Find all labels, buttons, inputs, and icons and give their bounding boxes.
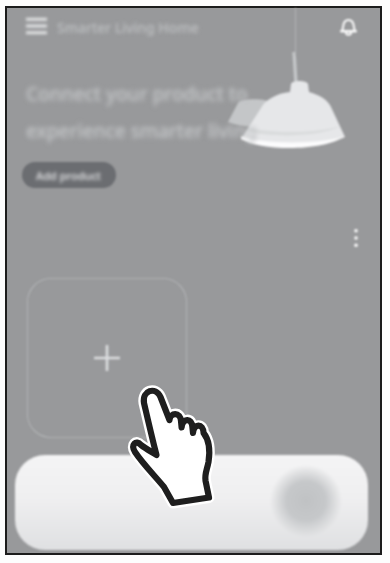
button[interactable]: More options	[336, 218, 376, 258]
staticText: Connect your product to	[26, 81, 248, 107]
staticText: Smarter Living Home	[57, 18, 199, 37]
staticText: experience smarter living	[26, 118, 258, 144]
button[interactable]: Add product	[22, 162, 116, 188]
staticText: Add product	[36, 168, 102, 183]
button[interactable]: Add device	[27, 278, 187, 438]
button[interactable]: Open navigation menu	[14, 4, 58, 48]
button[interactable]	[15, 455, 368, 550]
button[interactable]: Notifications	[327, 6, 369, 48]
